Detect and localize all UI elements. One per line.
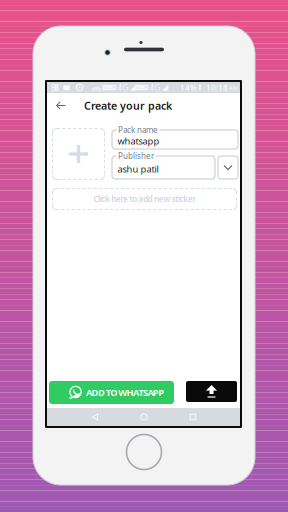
- staticText: Create your pack: [84, 98, 172, 113]
- staticText: VoLTE: [135, 85, 147, 90]
- staticText: ashu patil: [117, 163, 158, 175]
- button[interactable]: Home: [134, 408, 154, 426]
- staticText: ADD TO WHATSAPP: [86, 386, 164, 399]
- button[interactable]: Back: [49, 93, 73, 117]
- staticText: whatsapp: [117, 135, 159, 147]
- staticText: 4G: [149, 82, 160, 93]
- staticText: 14%: [180, 82, 197, 93]
- staticText: Click here to add new sticker: [93, 194, 196, 204]
- button[interactable]: Recent apps: [183, 408, 203, 426]
- button[interactable]: Click here to add new sticker: [52, 188, 237, 210]
- button[interactable]: Back: [85, 408, 105, 426]
- button[interactable]: Add tray image: [52, 128, 105, 180]
- staticText: AM: [229, 85, 238, 92]
- button[interactable]: ADD TO WHATSAPP: [49, 381, 174, 404]
- staticText: 10:18: [206, 82, 228, 93]
- staticText: VoLTE: [103, 85, 115, 90]
- staticText: 4G: [117, 82, 128, 93]
- button[interactable]: Export sticker pack: [186, 381, 237, 402]
- staticText: Publisher: [118, 151, 154, 161]
- button[interactable]: Choose publisher: [218, 156, 238, 179]
- staticText: Pack name: [118, 125, 158, 135]
